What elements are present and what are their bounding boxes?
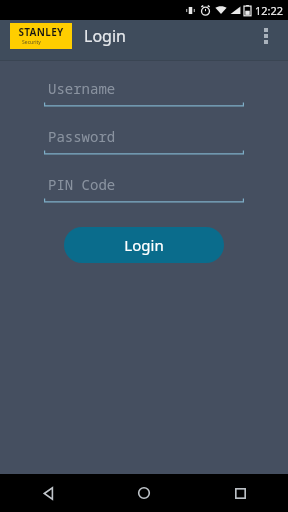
button[interactable]: PIN Code: [44, 173, 244, 203]
button[interactable]: Stanley Security: [10, 23, 72, 49]
button[interactable]: Username: [44, 77, 244, 107]
button[interactable]: Back: [0, 474, 96, 512]
button[interactable]: Login: [64, 227, 224, 263]
staticText: Login: [84, 25, 126, 47]
button[interactable]: Home: [96, 474, 192, 512]
staticText: 12:22: [255, 3, 284, 18]
staticText: Password: [48, 127, 116, 146]
staticText: STANLEY: [18, 25, 64, 39]
button[interactable]: More options: [250, 20, 282, 52]
staticText: Username: [48, 79, 116, 98]
button[interactable]: Password: [44, 125, 244, 155]
button[interactable]: Recent apps: [192, 474, 288, 512]
staticText: Security: [22, 39, 41, 46]
staticText: PIN Code: [48, 175, 116, 194]
staticText: Login: [124, 235, 164, 255]
